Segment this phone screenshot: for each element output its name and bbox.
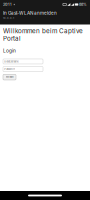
staticText: Anmelden — [5, 76, 13, 78]
staticText: In Gast-WLAN anmelden — [3, 10, 57, 16]
button[interactable]: Passwort — [3, 67, 43, 72]
staticText: 20:11 — [3, 2, 12, 7]
staticText: Passwort — [4, 67, 15, 71]
staticText: Benutzername — [4, 60, 18, 63]
staticText: 10.0.0.1 — [3, 17, 14, 20]
staticText: Login — [3, 48, 16, 54]
button[interactable]: Benutzername — [3, 59, 43, 64]
staticText: 88% — [79, 2, 87, 7]
button[interactable]: Anmelden — [3, 74, 16, 80]
staticText: Willkommen beim Captive Portal — [3, 27, 83, 42]
